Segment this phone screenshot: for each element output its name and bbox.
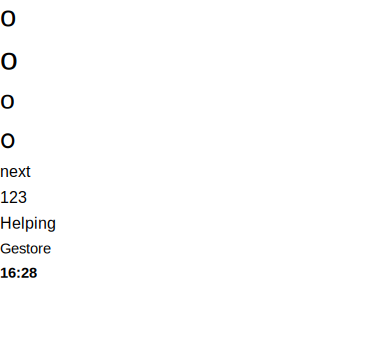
staticText: o [0, 41, 18, 77]
staticText: next [0, 163, 30, 180]
staticText: o [0, 122, 16, 155]
staticText: 16:28 [0, 265, 37, 281]
staticText: Helping [0, 214, 56, 232]
staticText: o [0, 0, 16, 33]
staticText: o [0, 84, 15, 114]
staticText: 123 [0, 188, 27, 206]
staticText: Gestore [0, 240, 51, 257]
